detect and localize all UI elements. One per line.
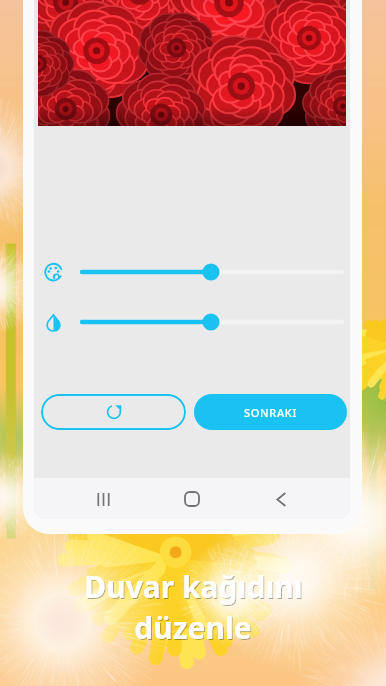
staticText: düzenle: [134, 607, 252, 648]
button[interactable]: SONRAKI: [194, 394, 347, 430]
other: Brightness: [44, 313, 63, 332]
staticText: SONRAKI: [244, 405, 298, 420]
button[interactable]: Shuffle: [41, 394, 186, 430]
button[interactable]: Recent apps: [83, 479, 123, 519]
button[interactable]: Back: [261, 479, 301, 519]
button[interactable]: [73, 305, 350, 339]
other: Colour: [44, 263, 63, 282]
button[interactable]: [73, 255, 350, 289]
staticText: Duvar kağıdını: [85, 567, 304, 608]
staticText: Duvar kağıdını: [84, 566, 303, 607]
staticText: düzenle: [135, 608, 253, 649]
button[interactable]: Home: [172, 479, 212, 519]
